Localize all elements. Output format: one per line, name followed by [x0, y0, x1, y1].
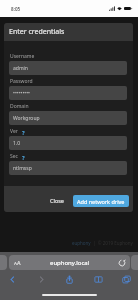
staticText: | © 2019 Euphony — [93, 240, 133, 246]
staticText: Ver — [10, 128, 18, 135]
button[interactable]: admin — [9, 61, 127, 75]
button[interactable]: ••••••••• — [9, 86, 127, 100]
staticText: euphony.local — [50, 259, 90, 267]
staticText: Username — [10, 53, 35, 60]
staticText: Password — [10, 78, 33, 85]
staticText: Add network drive — [77, 198, 125, 205]
staticText: ntlmssp — [13, 165, 32, 172]
button[interactable]: Bookmarks — [92, 273, 104, 285]
button[interactable]: Tabs — [120, 273, 132, 285]
staticText: 8:05 — [11, 6, 21, 12]
button[interactable]: Workgroup — [9, 111, 127, 125]
button[interactable]: Help — [20, 129, 26, 135]
button[interactable]: Previous tab — [0, 255, 7, 270]
staticText: Workgroup — [13, 115, 40, 122]
staticText: Enter credentials — [9, 27, 65, 37]
button[interactable]: Next tab — [131, 255, 138, 270]
staticText: ᴀA — [14, 259, 21, 266]
staticText: Close — [50, 197, 64, 204]
button[interactable]: euphony.local — [9, 255, 130, 270]
staticText: 1.0 — [13, 140, 21, 147]
button[interactable]: Add network drive — [73, 195, 129, 207]
staticText: ••••••••• — [13, 90, 30, 97]
button[interactable]: ntlmssp — [9, 161, 127, 175]
staticText: Sec — [10, 153, 18, 160]
button[interactable]: Share — [63, 273, 75, 285]
button[interactable]: euphony — [72, 240, 91, 246]
button[interactable]: Back — [6, 273, 18, 285]
staticText: admin — [13, 65, 28, 72]
button[interactable]: 1.0 — [9, 136, 127, 150]
button[interactable]: Help — [20, 154, 26, 160]
staticText: Domain — [10, 103, 29, 110]
staticText: ? — [22, 129, 25, 135]
button[interactable]: Close — [45, 194, 69, 207]
button[interactable]: Forward — [35, 273, 47, 285]
staticText: ? — [22, 154, 25, 160]
button[interactable]: Reload — [118, 259, 126, 267]
